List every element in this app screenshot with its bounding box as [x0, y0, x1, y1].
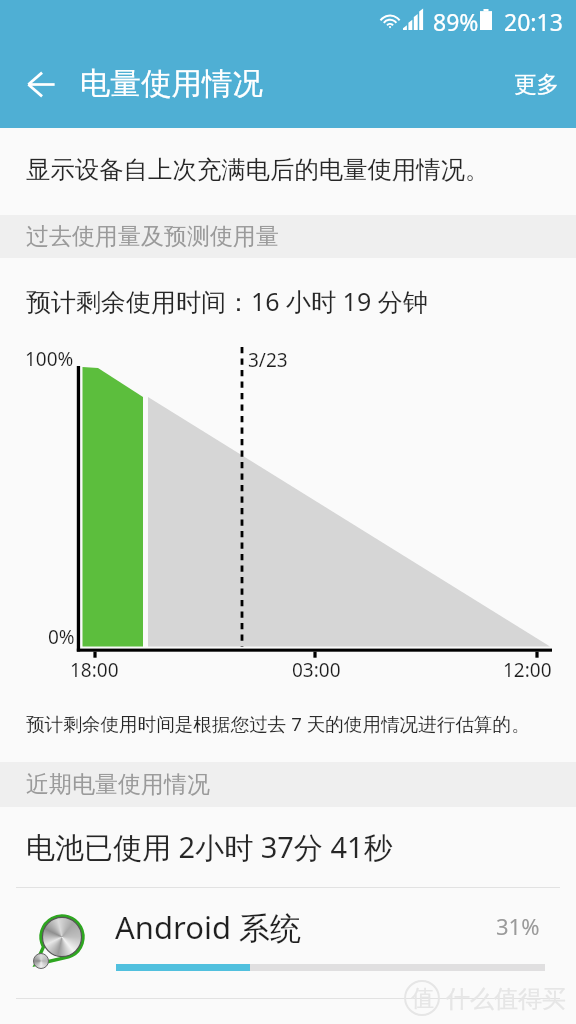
- staticText: 电池已使用 2小时 37分 41秒: [26, 827, 393, 867]
- staticText: 近期电量使用情况: [26, 770, 210, 799]
- staticText: 预计剩余使用时间是根据您过去 7 天的使用情况进行估算的。: [26, 711, 530, 736]
- staticText: 12:00: [503, 657, 552, 683]
- button[interactable]: Back: [14, 56, 70, 112]
- staticText: 值: [411, 984, 434, 1013]
- staticText: 过去使用量及预测使用量: [26, 222, 279, 251]
- staticText: 03:00: [292, 657, 341, 683]
- staticText: 89%: [433, 6, 479, 37]
- staticText: 20:13: [504, 6, 563, 37]
- staticText: 预计剩余使用时间：16 小时 19 分钟: [26, 284, 428, 318]
- staticText: 更多: [514, 70, 559, 98]
- staticText: 什么值得买: [446, 984, 566, 1014]
- staticText: 100%: [25, 346, 74, 372]
- staticText: 18:00: [70, 657, 119, 683]
- staticText: 31%: [496, 911, 540, 941]
- staticText: 电量使用情况: [80, 65, 263, 103]
- staticText: 0%: [48, 624, 75, 650]
- button[interactable]: 更多: [492, 52, 576, 116]
- staticText: Android 系统: [115, 906, 302, 948]
- staticText: 3/23: [248, 347, 288, 373]
- staticText: 显示设备自上次充满电后的电量使用情况。: [26, 155, 490, 186]
- button[interactable]: Android 系统: [0, 885, 576, 1000]
